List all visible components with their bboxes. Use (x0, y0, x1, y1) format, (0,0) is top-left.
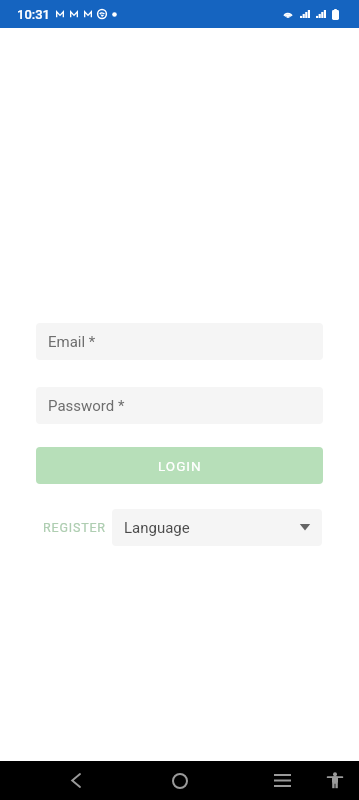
staticText: Email * (48, 333, 96, 351)
button[interactable]: Language (112, 509, 322, 546)
button[interactable]: Back (56, 761, 95, 800)
button[interactable]: Recent apps (263, 761, 302, 800)
button[interactable]: Password * (36, 387, 323, 424)
button[interactable]: Home (160, 761, 199, 800)
button[interactable]: Accessibility (315, 761, 354, 800)
staticText: LOGIN (158, 458, 202, 474)
button[interactable]: REGISTER (36, 514, 113, 541)
staticText: 10:31 (17, 7, 50, 22)
staticText: REGISTER (43, 520, 106, 535)
button[interactable]: LOGIN (36, 447, 323, 484)
button[interactable]: Email * (36, 323, 323, 360)
staticText: Password * (48, 397, 125, 415)
staticText: Language (124, 519, 190, 537)
